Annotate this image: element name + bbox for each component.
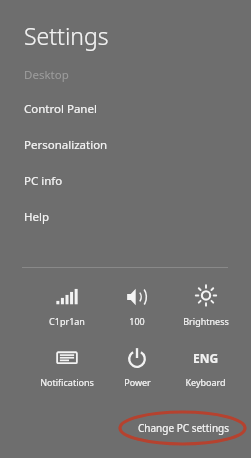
staticText: PC info [24, 173, 63, 189]
button[interactable]: PC info [0, 163, 251, 199]
button[interactable]: Power [102, 345, 172, 388]
button[interactable]: Desktop [0, 59, 251, 91]
staticText: C1pr1an [49, 315, 85, 327]
button[interactable]: Control Panel [0, 91, 251, 127]
staticText: Notifications [40, 376, 94, 388]
button[interactable]: Change PC settings [134, 419, 233, 437]
button[interactable]: Network C1pr1an [32, 284, 102, 327]
button[interactable]: Keyboard ENG [172, 345, 239, 388]
staticText: Help [24, 209, 50, 225]
button[interactable]: Volume 100 [102, 284, 172, 327]
staticText: Settings [24, 20, 109, 51]
button[interactable]: Personalization [0, 127, 251, 163]
staticText: Brightness [183, 315, 229, 327]
staticText: ENG [193, 350, 219, 366]
staticText: Keyboard [185, 376, 226, 388]
staticText: 100 [129, 315, 145, 327]
staticText: Control Panel [24, 101, 97, 117]
staticText: Change PC settings [138, 421, 229, 435]
button[interactable]: Notifications [32, 345, 102, 388]
staticText: Power [124, 376, 151, 388]
staticText: Desktop [24, 67, 69, 83]
staticText: Personalization [24, 137, 108, 153]
button[interactable]: Brightness [172, 284, 239, 327]
button[interactable]: Help [0, 199, 251, 235]
